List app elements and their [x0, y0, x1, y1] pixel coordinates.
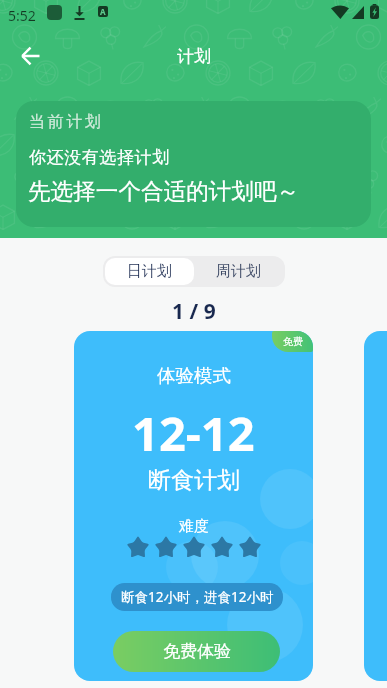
staticText: 先选择一个合适的计划吧～	[28, 177, 300, 205]
staticText: 难度	[179, 517, 209, 536]
staticText: 断食计划	[148, 466, 240, 495]
staticText: 日计划	[127, 262, 172, 281]
staticText: 免费	[283, 335, 303, 348]
button[interactable]: 体验模式	[74, 331, 313, 681]
button[interactable]: 免费体验	[113, 631, 280, 672]
staticText: 免费体验	[163, 641, 231, 662]
staticText: 5:52	[8, 6, 36, 25]
staticText: 12-12	[132, 401, 255, 465]
staticText: A	[100, 6, 106, 17]
staticText: 计划	[177, 46, 211, 67]
staticText: 1 / 9	[172, 297, 216, 326]
staticText: 断食12小时，进食12小时	[121, 588, 274, 606]
staticText: 周计划	[216, 262, 261, 281]
staticText: 你还没有选择计划	[29, 147, 170, 168]
staticText: 体验模式	[157, 364, 231, 387]
button[interactable]: 日计划	[105, 258, 194, 285]
staticText: 当前计划	[29, 112, 104, 132]
button[interactable]: 周计划	[194, 258, 283, 285]
button[interactable]: Back	[9, 35, 51, 77]
